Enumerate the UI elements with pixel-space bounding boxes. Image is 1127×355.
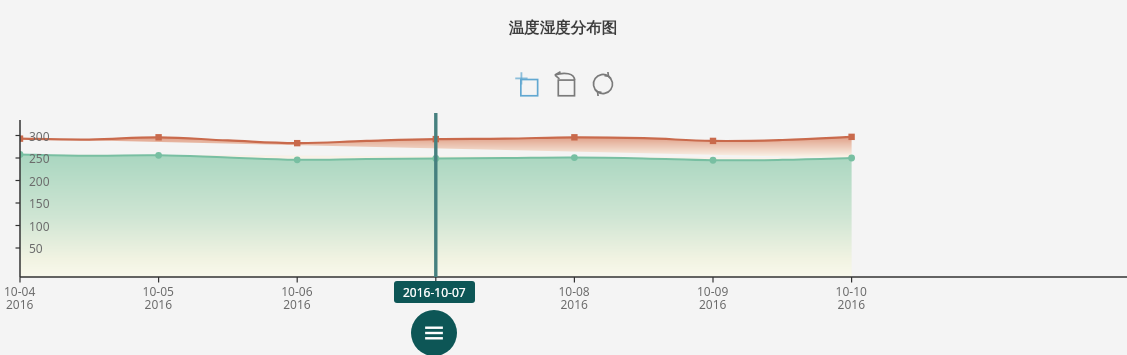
button[interactable]: Menu: [411, 310, 457, 355]
button[interactable]: Refresh: [589, 70, 617, 98]
button[interactable]: Data zoom select: [513, 70, 541, 98]
button[interactable]: 2016-10-07: [394, 281, 475, 303]
staticText: 2016-10-07: [403, 284, 466, 300]
button[interactable]: Restore zoom: [551, 70, 579, 98]
